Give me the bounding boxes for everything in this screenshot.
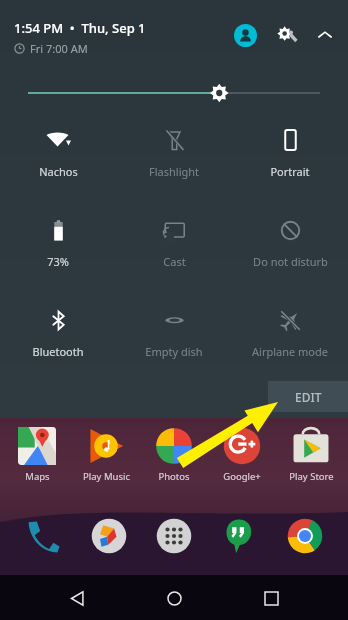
button[interactable]: EDIT <box>268 381 348 412</box>
button[interactable]: Airplane mode <box>232 297 348 387</box>
button[interactable]: Home <box>154 578 194 618</box>
staticText: Fri 7:00 AM <box>30 41 88 56</box>
staticText: Cast <box>163 254 186 269</box>
button[interactable]: Portrait <box>232 117 348 207</box>
button[interactable]: Empty dish <box>116 297 232 387</box>
staticText: Maps <box>25 470 50 483</box>
button[interactable]: Collapse <box>314 24 336 46</box>
button[interactable]: Play Store <box>280 427 342 483</box>
button[interactable]: All apps <box>152 514 196 558</box>
staticText: Airplane mode <box>252 344 328 359</box>
button[interactable]: Nachos <box>0 117 116 207</box>
button[interactable]: Maps <box>6 427 68 483</box>
staticText: EDIT <box>295 389 322 405</box>
staticText: Bluetooth <box>32 344 84 359</box>
staticText: Flashlight <box>149 164 199 179</box>
button[interactable]: Cast <box>116 207 232 297</box>
staticText: 73% <box>47 254 69 269</box>
staticText: 1:54 PM • Thu, Sep 1 <box>14 19 146 37</box>
button[interactable]: Settings <box>275 22 301 48</box>
staticText: Photos <box>158 470 190 483</box>
button[interactable]: Brightness <box>0 76 348 110</box>
staticText: Play Store <box>289 470 334 483</box>
button[interactable]: Chrome <box>283 514 327 558</box>
button[interactable]: Recents <box>251 578 291 618</box>
button[interactable]: Flashlight <box>116 117 232 207</box>
button[interactable]: Google+ <box>211 427 273 483</box>
staticText: Google+ <box>223 470 261 483</box>
button[interactable]: Do not disturb <box>232 207 348 297</box>
button[interactable]: Phone <box>21 514 65 558</box>
button[interactable]: Bluetooth <box>0 297 116 387</box>
staticText: Nachos <box>39 164 78 179</box>
button[interactable]: Play Music <box>75 427 137 483</box>
button[interactable]: 73% <box>0 207 116 297</box>
button[interactable]: Account <box>234 24 257 47</box>
staticText: Portrait <box>270 164 310 179</box>
button[interactable]: Photos <box>143 427 205 483</box>
button[interactable]: Hangouts <box>217 514 261 558</box>
staticText: Empty dish <box>145 344 203 359</box>
staticText: Do not disturb <box>253 254 328 269</box>
button[interactable]: Back <box>57 578 97 618</box>
button[interactable]: Messaging <box>87 514 131 558</box>
staticText: Play Music <box>83 470 130 483</box>
